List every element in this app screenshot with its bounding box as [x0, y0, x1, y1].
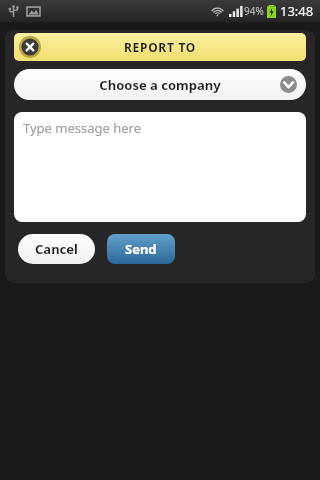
button[interactable]: Send — [107, 234, 175, 264]
staticText: Choose a company — [99, 76, 221, 94]
staticText: Send — [125, 240, 157, 258]
button[interactable]: Type message here — [14, 112, 306, 222]
staticText: 13:48 — [280, 2, 314, 20]
staticText: Cancel — [35, 240, 78, 258]
staticText: 94% — [244, 4, 264, 18]
button[interactable]: Choose a company — [14, 69, 306, 100]
button[interactable]: Close — [18, 35, 42, 59]
staticText: REPORT TO — [124, 39, 196, 55]
staticText: Type message here — [23, 119, 142, 137]
button[interactable]: Cancel — [18, 234, 95, 264]
